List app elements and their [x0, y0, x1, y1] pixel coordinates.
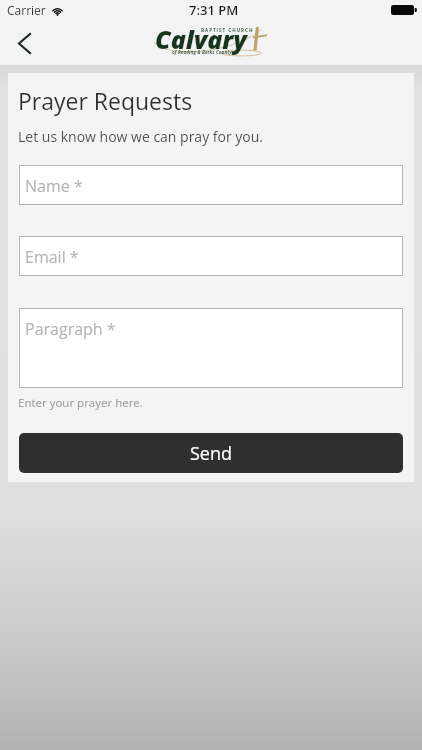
staticText: Send [190, 441, 233, 466]
button[interactable]: Back [6, 25, 42, 61]
staticText: Name * [25, 175, 83, 197]
button[interactable]: Name * [19, 165, 403, 205]
staticText: of Reading & Berks County [172, 49, 232, 55]
button[interactable]: Send [19, 433, 403, 473]
staticText: Email * [25, 246, 79, 268]
staticText: Calvary [155, 22, 247, 56]
button[interactable]: Email * [19, 236, 403, 276]
staticText: Prayer Requests [18, 85, 193, 116]
staticText: Carrier [7, 2, 46, 18]
staticText: Paragraph * [25, 318, 116, 340]
staticText: Let us know how we can pray for you. [18, 127, 263, 146]
staticText: BAPTIST CHURCH [201, 27, 254, 33]
button[interactable]: Paragraph * [19, 308, 403, 388]
staticText: 7:31 PM [189, 1, 239, 19]
staticText: Enter your prayer here. [18, 395, 143, 411]
